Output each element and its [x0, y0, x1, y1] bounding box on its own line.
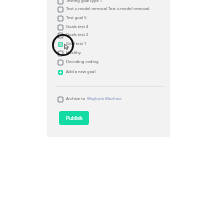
staticText: Goals test 2	[66, 32, 89, 38]
button[interactable]: Add a new goal	[58, 68, 168, 76]
button[interactable]: Test goal 5	[58, 14, 168, 22]
staticText: Wayback Machine	[87, 96, 122, 102]
staticText: Testing goal type 1	[66, 0, 103, 4]
staticText: Goals test 4	[66, 24, 89, 30]
staticText: Decoding coding	[66, 59, 99, 65]
staticText: Add a new goal	[66, 69, 96, 75]
button[interactable]: Goals test 2	[58, 31, 168, 39]
button[interactable]: Testing goal type 1	[58, 0, 168, 5]
staticText: Healthy	[66, 50, 81, 56]
button[interactable]: Archive to	[58, 95, 168, 103]
staticText: Archive to	[66, 96, 87, 102]
staticText: Test v-model removal Test v-model remova…	[66, 6, 151, 12]
staticText: Publish	[66, 115, 83, 122]
button[interactable]: Goals test 4	[58, 23, 168, 31]
staticText: Goal test 1	[66, 41, 87, 47]
button[interactable]: Goal test 1	[58, 40, 168, 48]
button[interactable]: Test v-model removal Test v-model remova…	[58, 5, 168, 13]
button[interactable]: Publish	[59, 111, 89, 125]
staticText: Test goal 5	[66, 15, 87, 21]
button[interactable]: Decoding coding	[58, 58, 168, 66]
button[interactable]: Healthy	[58, 49, 168, 57]
